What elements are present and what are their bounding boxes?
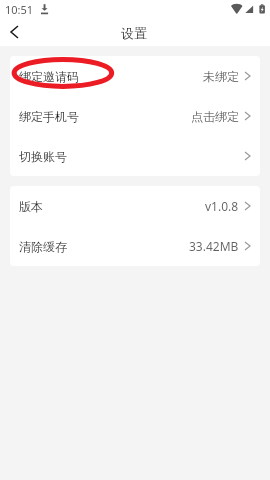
staticText: 10:51 (5, 2, 34, 17)
button[interactable]: 绑定邀请码 (10, 56, 260, 96)
staticText: 版本 (19, 199, 43, 214)
button[interactable]: 切换账号 (10, 136, 260, 176)
staticText: 切换账号 (19, 149, 67, 164)
staticText: 设置 (121, 25, 147, 41)
staticText: 清除缓存 (19, 239, 67, 254)
staticText: 点击绑定 (191, 109, 239, 124)
staticText: 绑定手机号 (19, 109, 79, 124)
staticText: 33.42MB (189, 238, 239, 254)
button[interactable]: 清除缓存 (10, 226, 260, 266)
button[interactable]: Back (0, 18, 28, 46)
staticText: 绑定邀请码 (19, 69, 79, 84)
staticText: 未绑定 (203, 69, 239, 84)
staticText: v1.0.8 (205, 198, 239, 214)
button[interactable]: 绑定手机号 (10, 96, 260, 136)
button[interactable]: 版本 (10, 186, 260, 226)
